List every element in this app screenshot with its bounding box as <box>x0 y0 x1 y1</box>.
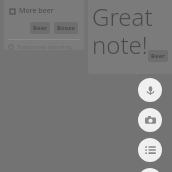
button[interactable]: Tomorrow morning <box>8 42 82 51</box>
staticText: Booze <box>57 24 75 32</box>
button[interactable]: New note <box>138 168 162 172</box>
staticText: Great note! <box>92 0 166 61</box>
button[interactable]: More beer <box>10 6 54 16</box>
button[interactable]: Voice note <box>138 78 162 102</box>
button[interactable]: Booze <box>54 22 78 34</box>
button[interactable]: Great note! <box>88 0 172 74</box>
staticText: More beer <box>19 6 54 16</box>
staticText: Tomorrow morning <box>17 43 72 51</box>
button[interactable]: Photo note <box>138 108 162 132</box>
button[interactable]: List note <box>138 138 162 162</box>
button[interactable]: Beer <box>148 50 168 62</box>
staticText: Beer <box>33 24 47 32</box>
button[interactable]: Beer <box>30 22 50 34</box>
button[interactable]: Beer <box>4 0 84 50</box>
staticText: Beer <box>151 52 165 60</box>
